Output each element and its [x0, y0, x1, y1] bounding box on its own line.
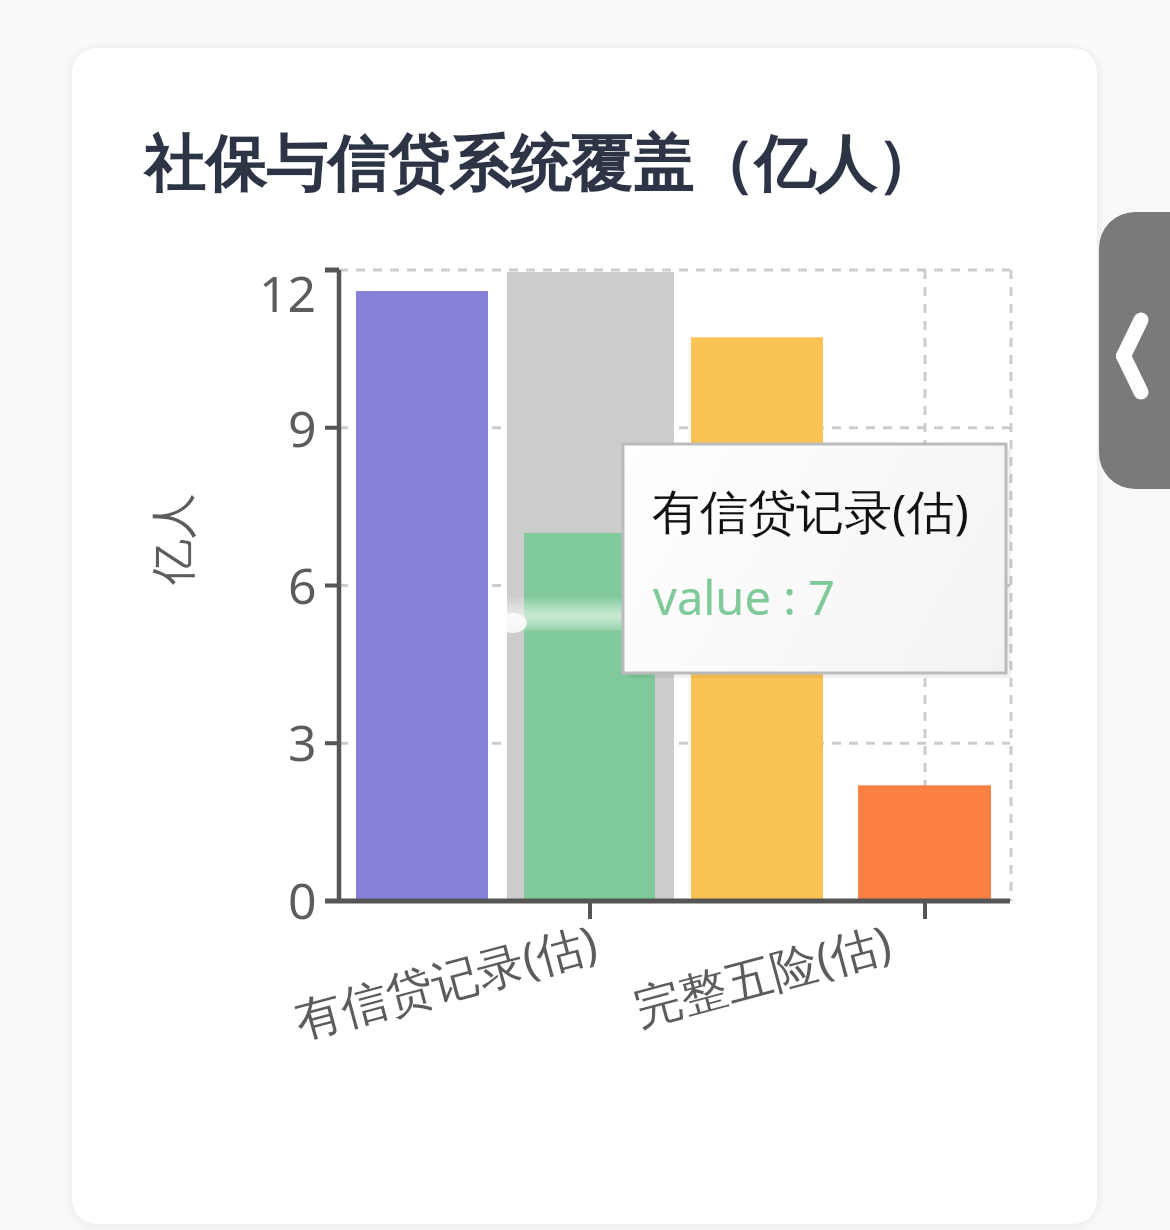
button[interactable]: 社保与信贷系统覆盖（亿人）柱状图 — [72, 48, 1097, 1224]
button[interactable]: Collapse panel — [1099, 212, 1170, 489]
